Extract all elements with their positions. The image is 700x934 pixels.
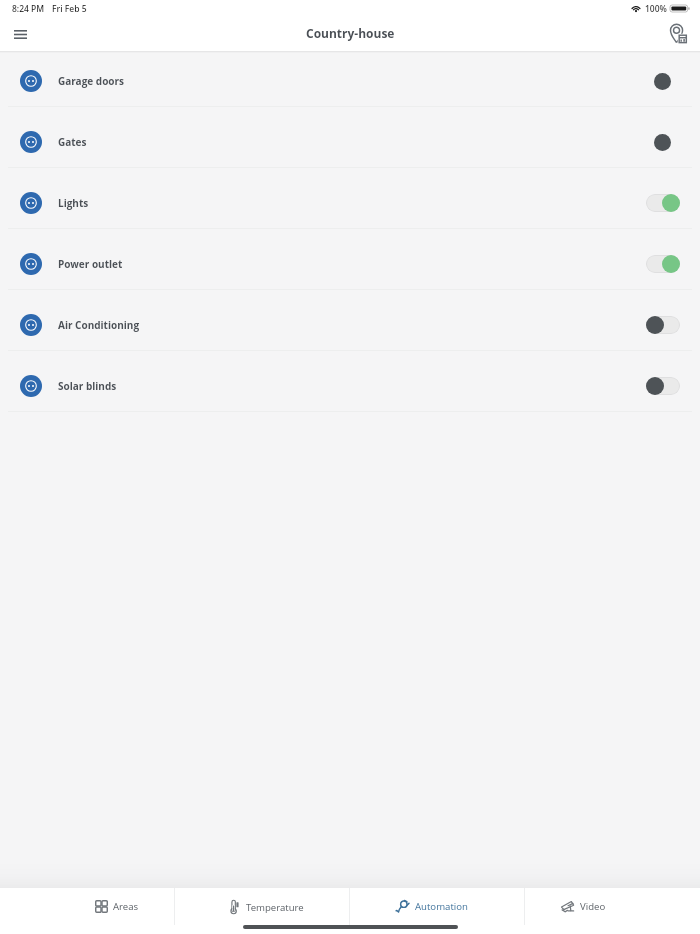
button[interactable]: Lights switch — [646, 194, 680, 212]
staticText: Lights — [58, 196, 89, 210]
button[interactable]: Power outlet switch — [646, 255, 680, 273]
staticText: Gates — [58, 135, 87, 149]
button[interactable]: Air Conditioning — [0, 290, 700, 350]
staticText: 8:24 PM — [12, 3, 45, 15]
staticText: Automation — [415, 900, 468, 913]
staticText: Fri Feb 5 — [52, 3, 87, 15]
staticText: Air Conditioning — [58, 318, 140, 332]
button[interactable]: Open navigation menu — [6, 20, 34, 48]
button[interactable]: Power outlet — [0, 229, 700, 289]
staticText: Solar blinds — [58, 379, 117, 393]
button[interactable]: Video — [525, 888, 700, 925]
button[interactable]: Garage doors — [0, 51, 700, 106]
staticText: Garage doors — [58, 74, 125, 88]
staticText: Country-house — [306, 25, 395, 41]
button[interactable]: Automation — [350, 888, 525, 925]
staticText: Temperature — [246, 901, 304, 914]
button[interactable]: Solar blinds — [0, 351, 700, 411]
button[interactable]: Areas — [0, 888, 175, 925]
button[interactable]: Lights — [0, 168, 700, 228]
staticText: Video — [580, 900, 606, 913]
button[interactable]: Air Conditioning switch — [646, 316, 680, 334]
button[interactable]: Gates — [0, 107, 700, 167]
button[interactable]: Solar blinds switch — [646, 377, 680, 395]
button[interactable]: Location info — [665, 21, 691, 47]
staticText: Areas — [113, 900, 139, 913]
staticText: Power outlet — [58, 257, 123, 271]
button[interactable]: Temperature — [175, 888, 350, 925]
button[interactable]: Gates control — [654, 134, 671, 151]
staticText: 100% — [645, 3, 667, 15]
button[interactable]: Garage doors control — [654, 73, 671, 90]
